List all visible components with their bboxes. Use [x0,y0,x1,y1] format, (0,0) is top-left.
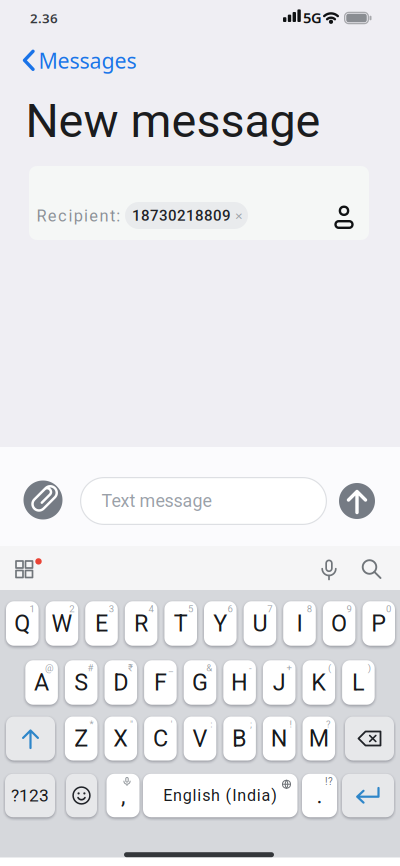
staticText: L [352,669,365,696]
staticText: 0 [386,603,391,614]
staticText: 2.36 [30,9,58,27]
button[interactable]: Shift [6,716,55,760]
button[interactable]: Return [342,774,394,817]
staticText: V [192,725,207,752]
button[interactable]: E [85,601,118,646]
staticText: D [113,669,128,696]
staticText: H [231,669,248,696]
staticText: J [273,669,286,696]
staticText: & [206,662,212,673]
button[interactable]: Y [204,601,237,646]
staticText: Q [14,610,30,637]
button[interactable]: G [184,660,216,705]
button[interactable]: T [164,601,197,646]
staticText: K [311,669,326,696]
staticText: N [271,725,288,752]
button[interactable]: 18730218809 [125,202,248,229]
staticText: 5 [188,603,193,614]
staticText: 7 [267,603,272,614]
staticText: G [192,669,208,696]
button[interactable]: Messages [22,45,252,75]
staticText: 6 [228,603,233,614]
staticText: " [130,718,133,730]
staticText: ₹ [128,662,133,673]
button[interactable]: Text message [80,477,327,525]
button[interactable]: O [323,601,355,646]
staticText: W [51,610,72,637]
button[interactable]: ?123 [5,774,55,817]
staticText: C [153,725,168,752]
staticText: × [235,207,243,224]
staticText: , [121,782,125,809]
staticText: 5G [303,8,322,27]
button[interactable]: C [144,716,177,760]
staticText: Z [74,725,88,752]
staticText: ?123 [11,785,49,806]
button[interactable]: S [65,660,97,705]
button[interactable]: English (India) [143,774,297,817]
staticText: M [309,725,329,752]
staticText: @ [45,662,54,673]
staticText: # [87,662,93,673]
button[interactable]: H [223,660,256,705]
staticText: A [34,669,49,696]
button[interactable]: J [263,660,295,705]
staticText: X [113,725,128,752]
staticText: + [286,662,291,673]
button[interactable]: F [144,660,177,705]
staticText: 2 [69,603,74,614]
staticText: 18730218809 [132,207,231,224]
button[interactable]: V [184,716,216,760]
button[interactable]: B [223,716,256,760]
button[interactable]: K [302,660,335,705]
button[interactable]: Z [65,716,97,760]
button[interactable]: Choose contact [331,204,357,232]
staticText: 1 [30,603,35,614]
button[interactable]: Voice typing [320,558,338,579]
staticText: F [154,669,167,696]
button[interactable]: P [362,601,395,646]
staticText: E [95,610,108,637]
button[interactable]: L [342,660,375,705]
button[interactable]: . [302,774,337,817]
staticText: Messages [38,46,136,75]
staticText: - [249,662,252,673]
staticText: English (India) [163,786,277,805]
staticText: !? [325,776,333,787]
staticText: _ [169,662,173,673]
staticText: 9 [346,603,351,614]
staticText: : [210,718,212,730]
staticText: I [296,610,302,637]
button[interactable]: U [244,601,276,646]
staticText: * [89,718,93,730]
button[interactable]: W [46,601,78,646]
button[interactable]: R [125,601,157,646]
staticText: Y [213,610,227,637]
staticText: ) [368,662,371,673]
staticText: S [74,669,88,696]
button[interactable]: M [302,716,335,760]
staticText: Recipient: [36,206,120,226]
staticText: New message [25,94,320,148]
staticText: Text message [101,490,211,511]
button[interactable]: X [104,716,137,760]
button[interactable]: Send [339,483,375,519]
button[interactable]: , [106,774,139,817]
button[interactable]: N [263,716,295,760]
staticText: ! [289,718,291,730]
staticText: ; [250,718,252,730]
button[interactable]: Q [6,601,39,646]
button[interactable]: Search [361,559,381,579]
button[interactable]: Emoji [66,774,97,817]
staticText: 8 [307,603,312,614]
button[interactable]: Attach file [23,480,62,519]
staticText: T [174,610,188,637]
button[interactable]: A [25,660,58,705]
button[interactable]: D [104,660,137,705]
staticText: ' [171,718,173,730]
button[interactable]: Gboard menu [15,558,42,581]
button[interactable]: Delete [345,716,394,760]
staticText: U [252,610,267,637]
button[interactable]: I [283,601,316,646]
staticText: 3 [109,603,114,614]
